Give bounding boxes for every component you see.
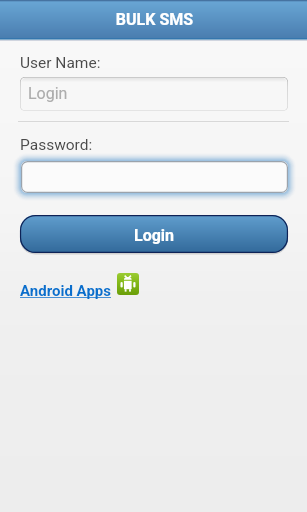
staticText: User Name:: [20, 54, 101, 72]
staticText: Login: [28, 84, 68, 103]
staticText: Android Apps: [20, 282, 115, 300]
other: Android Apps: [117, 273, 139, 295]
staticText: BULK SMS: [1, 10, 307, 29]
button[interactable]: [21, 161, 288, 193]
button[interactable]: Android Apps: [20, 273, 139, 295]
button[interactable]: Login: [20, 215, 288, 255]
button[interactable]: Login: [20, 77, 288, 111]
staticText: Login: [134, 226, 175, 245]
staticText: Password:: [20, 136, 93, 154]
